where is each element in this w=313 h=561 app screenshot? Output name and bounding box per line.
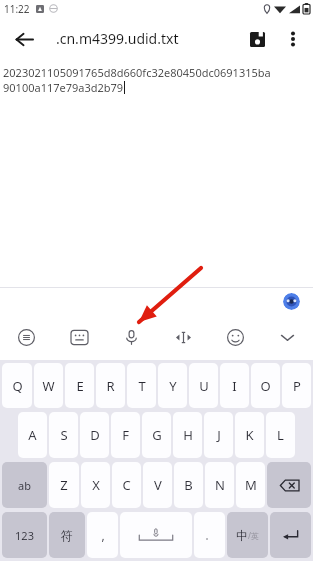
button[interactable]: U — [189, 363, 218, 408]
button[interactable]: C — [112, 462, 141, 508]
staticText: O — [260, 377, 271, 395]
button[interactable]: T — [127, 363, 156, 408]
button[interactable]: J — [204, 412, 233, 458]
button[interactable]: M — [236, 462, 265, 508]
button[interactable]: Hide keyboard — [261, 322, 313, 352]
button[interactable]: H — [173, 412, 202, 458]
button[interactable]: Voice input — [105, 322, 157, 352]
staticText: D — [90, 426, 100, 444]
button[interactable]: I — [220, 363, 249, 408]
button[interactable]: L — [266, 412, 295, 458]
staticText: J — [217, 426, 221, 444]
button[interactable]: Z — [49, 462, 79, 508]
staticText: , — [101, 527, 105, 543]
staticText: K — [245, 426, 254, 444]
button[interactable]: , — [87, 512, 118, 558]
button[interactable]: X — [81, 462, 110, 508]
button[interactable]: Backspace — [267, 462, 311, 508]
staticText: P — [293, 377, 301, 395]
button[interactable]: More options — [275, 21, 311, 57]
button[interactable]: W — [34, 363, 63, 408]
button[interactable]: N — [205, 462, 234, 508]
button[interactable]: 。 — [194, 512, 225, 558]
staticText: 11:22 — [4, 2, 30, 16]
staticText: Q — [12, 377, 23, 395]
button[interactable]: A — [18, 412, 47, 458]
button[interactable]: R — [96, 363, 125, 408]
button[interactable]: Space — [120, 512, 192, 558]
button[interactable]: F — [111, 412, 140, 458]
staticText: A — [28, 426, 37, 444]
staticText: 中 — [236, 528, 248, 543]
button[interactable]: Emoji — [209, 322, 261, 352]
button[interactable]: D — [80, 412, 109, 458]
staticText: I — [232, 377, 237, 395]
staticText: B — [184, 476, 193, 494]
staticText: U — [199, 377, 209, 395]
button[interactable]: V — [143, 462, 172, 508]
staticText: 90100a117e79a3d2b79 — [3, 80, 124, 95]
button[interactable]: 2023021105091765d8d660fc32e80450dc069131… — [0, 60, 313, 561]
staticText: M — [245, 476, 257, 494]
staticText: N — [215, 476, 225, 494]
staticText: 2023021105091765d8d660fc32e80450dc069131… — [3, 65, 271, 80]
staticText: S — [60, 426, 68, 444]
button[interactable]: G — [142, 412, 171, 458]
staticText: /英 — [248, 530, 259, 541]
button[interactable]: Back — [5, 20, 43, 58]
staticText: C — [122, 476, 131, 494]
button[interactable]: Switch Chinese English — [227, 512, 268, 558]
staticText: Y — [169, 377, 177, 395]
staticText: ab — [18, 478, 31, 493]
staticText: G — [152, 426, 162, 444]
button[interactable]: K — [235, 412, 264, 458]
staticText: 123 — [15, 528, 34, 543]
staticText: X — [92, 476, 100, 494]
staticText: 符 — [61, 528, 73, 543]
button[interactable]: P — [282, 363, 311, 408]
button[interactable]: Move cursor — [157, 322, 209, 352]
button[interactable]: E — [65, 363, 94, 408]
button[interactable]: ab — [2, 462, 47, 508]
staticText: L — [277, 426, 284, 444]
staticText: H — [183, 426, 193, 444]
staticText: E — [76, 377, 84, 395]
button[interactable]: Keyboard layout — [53, 322, 105, 352]
button[interactable]: 123 — [2, 512, 47, 558]
button[interactable]: Input method settings — [0, 322, 53, 352]
staticText: T — [138, 377, 146, 395]
staticText: W — [42, 377, 55, 395]
staticText: F — [122, 426, 129, 444]
staticText: V — [154, 476, 162, 494]
button[interactable]: O — [251, 363, 280, 408]
staticText: Z — [60, 476, 68, 494]
button[interactable]: Keyboard account — [283, 293, 300, 310]
button[interactable]: B — [174, 462, 203, 508]
button[interactable]: Enter — [270, 512, 311, 558]
button[interactable]: Save — [239, 21, 275, 57]
staticText: R — [106, 377, 115, 395]
button[interactable]: Y — [158, 363, 187, 408]
button[interactable]: S — [49, 412, 78, 458]
button[interactable]: 符 — [49, 512, 85, 558]
button[interactable]: Q — [2, 363, 32, 408]
staticText: .cn.m4399.udid.txt — [56, 29, 179, 48]
staticText: 。 — [205, 530, 214, 541]
